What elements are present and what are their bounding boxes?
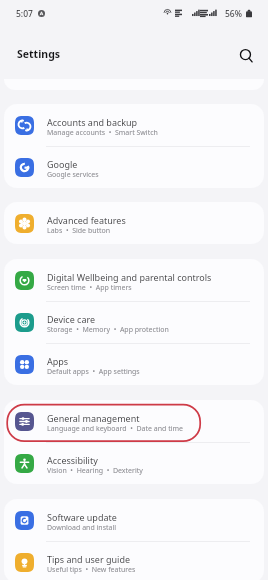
- staticText: Device care: [47, 313, 96, 325]
- staticText: Tips and user guide: [47, 553, 131, 565]
- button[interactable]: Apps: [4, 343, 264, 385]
- staticText: Language and keyboard • Date and time: [47, 424, 184, 434]
- staticText: Settings: [17, 47, 61, 61]
- button[interactable]: Accounts and backup: [4, 104, 264, 146]
- button[interactable]: General management: [4, 400, 264, 442]
- staticText: Google services: [47, 170, 99, 180]
- staticText: Download and install: [47, 523, 117, 533]
- staticText: Accessibility: [47, 454, 98, 466]
- staticText: Apps: [47, 355, 69, 367]
- staticText: Manage accounts • Smart Switch: [47, 128, 158, 138]
- staticText: Google: [47, 158, 78, 170]
- staticText: General management: [47, 412, 140, 424]
- staticText: 56%: [225, 8, 242, 20]
- staticText: Labs • Side button: [47, 226, 111, 236]
- button[interactable]: Google: [4, 146, 264, 188]
- button[interactable]: Accessibility: [4, 442, 264, 484]
- staticText: Advanced features: [47, 214, 126, 226]
- staticText: Screen time • App timers: [47, 283, 132, 293]
- staticText: Digital Wellbeing and parental controls: [47, 271, 212, 283]
- staticText: Default apps • App settings: [47, 367, 140, 377]
- button[interactable]: Search: [234, 44, 258, 68]
- staticText: Accounts and backup: [47, 116, 138, 128]
- button[interactable]: Digital Wellbeing and parental controls: [4, 259, 264, 301]
- button[interactable]: Tips and user guide: [4, 541, 264, 580]
- staticText: Useful tips • New features: [47, 565, 136, 575]
- staticText: 5:07: [16, 8, 33, 20]
- button[interactable]: Advanced features: [4, 202, 264, 244]
- button[interactable]: Device care: [4, 301, 264, 343]
- button[interactable]: Software update: [4, 499, 264, 541]
- staticText: Software update: [47, 511, 117, 523]
- staticText: Storage • Memory • App protection: [47, 325, 169, 335]
- staticText: Vision • Hearing • Dexterity: [47, 466, 143, 476]
